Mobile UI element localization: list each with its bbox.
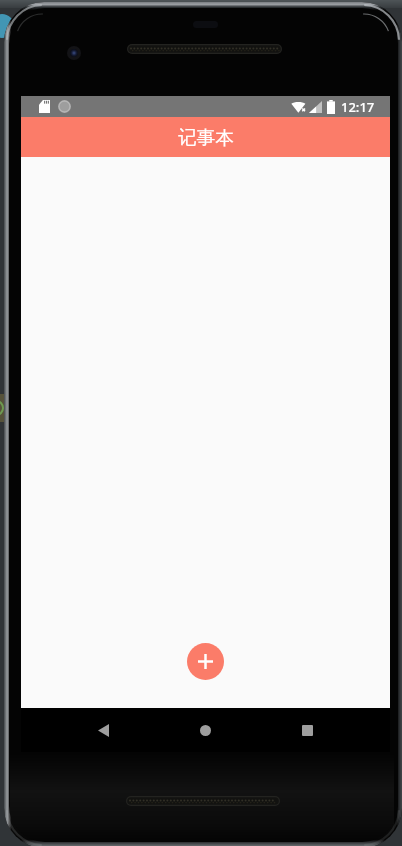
staticText: 记事本 xyxy=(178,126,234,149)
button[interactable]: Recent apps xyxy=(287,710,327,750)
button[interactable]: Home xyxy=(185,710,225,750)
button[interactable]: Back xyxy=(83,710,123,750)
staticText: 12:17 xyxy=(341,98,375,116)
button[interactable]: Add note xyxy=(187,643,224,680)
